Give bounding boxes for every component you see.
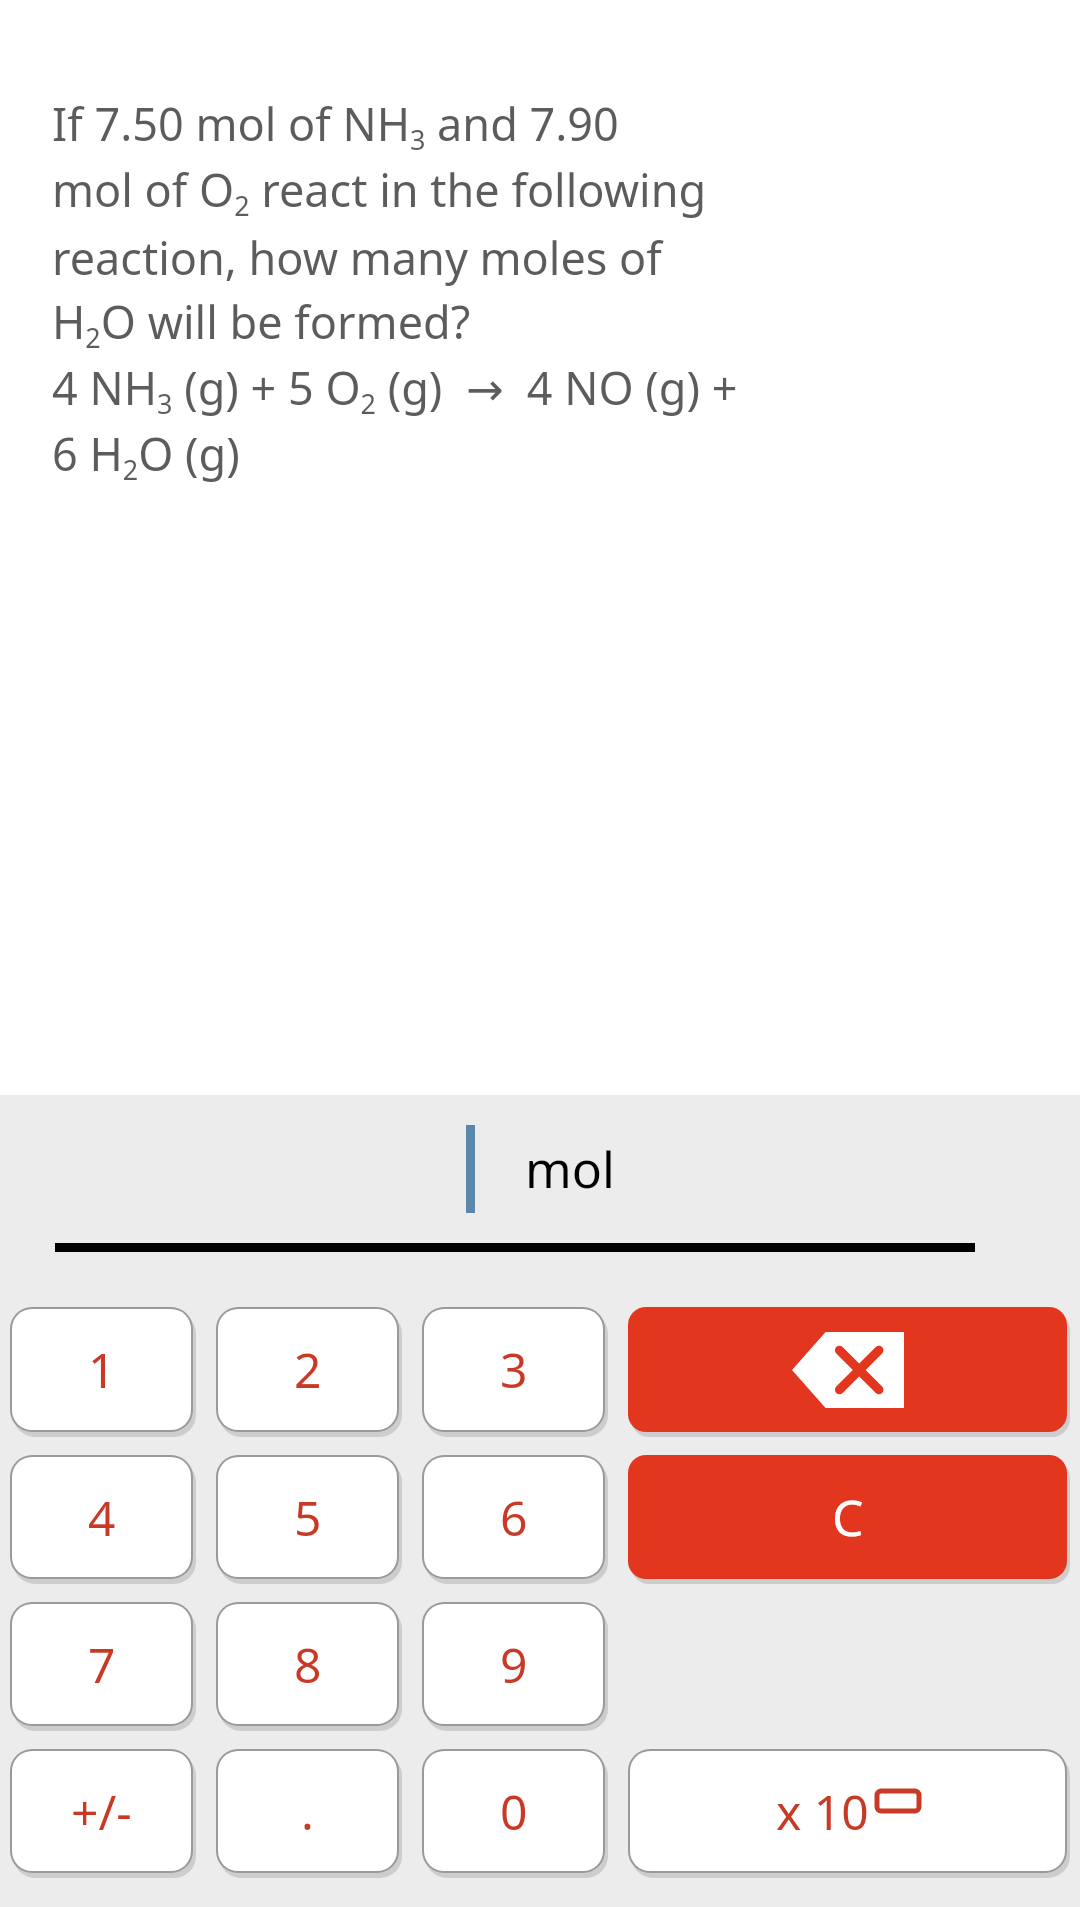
button[interactable]: 0 [424,1751,603,1871]
staticText: 8 [294,1632,322,1697]
button[interactable]: 6 [424,1457,603,1577]
button[interactable]: x 10 [630,1751,1065,1871]
staticText: . [301,1779,314,1844]
button[interactable]: 4 [12,1457,191,1577]
staticText: C [832,1483,864,1551]
staticText: If 7.50 mol of NH3 and 7.90 [52,93,619,158]
staticText: x 10 [776,1779,869,1844]
staticText: 1 [88,1337,116,1402]
button[interactable]: 1 [12,1309,191,1430]
staticText: 0 [500,1779,528,1844]
staticText: 2 [294,1337,322,1402]
staticText: 4 NH3 (g) + 5 O2 (g) → 4 NO (g) + [52,357,738,422]
staticText: 6 H2O (g) [52,423,240,488]
button[interactable]: C [628,1455,1067,1579]
staticText: 9 [500,1632,528,1697]
button[interactable]: Backspace [628,1307,1067,1432]
staticText: 3 [500,1337,528,1402]
button[interactable]: . [218,1751,397,1871]
staticText: +/- [71,1779,132,1844]
button[interactable]: 2 [218,1309,397,1430]
button[interactable]: 8 [218,1604,397,1724]
button[interactable]: 3 [424,1309,603,1430]
staticText: 7 [88,1632,116,1697]
staticText: H2O will be formed? [52,291,471,356]
staticText: 4 [88,1485,116,1550]
button[interactable]: +/- [12,1751,191,1871]
staticText: 6 [500,1485,528,1550]
button[interactable]: 5 [218,1457,397,1577]
staticText: mol of O2 react in the following [52,159,707,224]
button[interactable]: 9 [424,1604,603,1724]
staticText: 5 [294,1485,322,1550]
button[interactable]: 7 [12,1604,191,1724]
staticText: mol [525,1135,615,1203]
staticText: reaction, how many moles of [52,227,662,288]
